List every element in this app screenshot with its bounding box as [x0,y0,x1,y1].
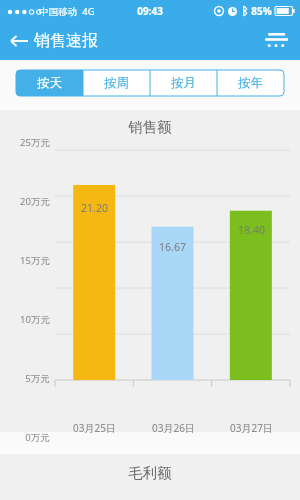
staticText: 15万元 [20,254,50,267]
staticText: 0万元 [25,431,50,444]
button[interactable]: 按月 [150,70,217,96]
staticText: 按天 [37,75,62,91]
staticText: 03月26日 [152,421,195,435]
staticText: 销售速报 [34,31,98,51]
staticText: 10万元 [20,313,50,326]
staticText: 5万元 [25,372,50,385]
staticText: 03月27日 [230,421,273,435]
button[interactable]: 按周 [83,70,150,96]
button[interactable]: 销售速报 [0,27,106,55]
staticText: 16.67 [159,240,186,254]
staticText: 按月 [171,75,196,91]
button[interactable]: Menu [252,25,300,57]
staticText: 03月25日 [73,421,116,435]
staticText: 按周 [104,75,129,91]
button[interactable]: 按年 [217,70,284,96]
staticText: 4G [82,5,95,18]
staticText: 85% [251,4,272,18]
staticText: 09:43 [137,4,163,18]
staticText: 按年 [238,75,263,91]
button[interactable]: 按天 [16,70,83,96]
staticText: 18.40 [238,223,265,237]
staticText: 中国移动 [39,6,77,18]
staticText: 21.20 [81,201,108,215]
staticText: 销售额 [128,118,172,136]
staticText: 25万元 [20,136,50,149]
staticText: 毛利额 [128,464,172,482]
staticText: 20万元 [20,195,50,208]
